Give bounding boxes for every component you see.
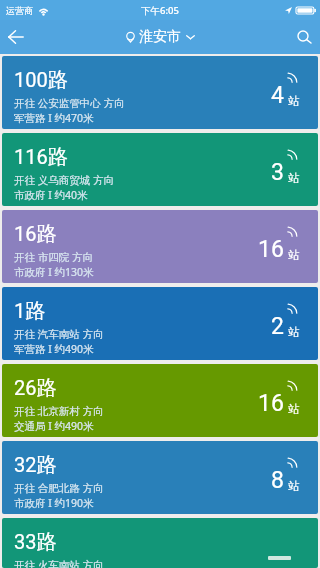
staticText: 116路: [14, 145, 68, 170]
button[interactable]: Search: [288, 20, 320, 54]
staticText: 26路: [14, 376, 57, 401]
staticText: 站: [288, 479, 300, 493]
staticText: 开往 合肥北路 方向: [14, 481, 104, 495]
staticText: 运营商: [6, 5, 33, 16]
staticText: 1路: [14, 299, 46, 324]
button[interactable]: 26路: [2, 364, 318, 437]
button[interactable]: Back: [0, 20, 32, 54]
staticText: 站: [288, 248, 300, 262]
staticText: 市政府 I 约130米: [14, 265, 94, 279]
staticText: 开往 公安监管中心 方向: [14, 96, 125, 110]
staticText: 下午6:05: [141, 4, 179, 17]
button[interactable]: 32路: [2, 441, 318, 514]
button[interactable]: 100路: [2, 56, 318, 129]
staticText: 淮安市: [139, 28, 181, 46]
staticText: 军营路 I 约490米: [14, 342, 94, 356]
staticText: 市政府 I 约40米: [14, 188, 88, 202]
staticText: 32路: [14, 453, 57, 478]
staticText: 站: [288, 325, 300, 339]
staticText: 站: [288, 402, 300, 416]
staticText: 军营路 I 约470米: [14, 111, 94, 125]
staticText: 4: [271, 82, 284, 109]
button[interactable]: 1路: [2, 287, 318, 360]
staticText: 33路: [14, 530, 57, 555]
button[interactable]: 33路: [2, 518, 318, 568]
button[interactable]: 淮安市: [118, 24, 203, 50]
staticText: 开往 义乌商贸城 方向: [14, 173, 114, 187]
staticText: 开往 火车南站 方向: [14, 558, 104, 568]
staticText: 开往 市四院 方向: [14, 250, 93, 264]
staticText: 100路: [14, 68, 68, 93]
button[interactable]: 16路: [2, 210, 318, 283]
staticText: 站: [288, 171, 300, 185]
staticText: 16: [258, 236, 284, 263]
staticText: 站: [288, 94, 300, 108]
staticText: 开往 汽车南站 方向: [14, 327, 104, 341]
staticText: 16路: [14, 222, 57, 247]
staticText: 16: [258, 390, 284, 417]
button[interactable]: 116路: [2, 133, 318, 206]
staticText: 2: [271, 313, 284, 340]
staticText: 3: [271, 159, 284, 186]
staticText: 8: [271, 467, 284, 494]
staticText: 交通局 I 约490米: [14, 419, 94, 433]
staticText: 开往 北京新村 方向: [14, 404, 104, 418]
staticText: 市政府 I 约190米: [14, 496, 94, 510]
